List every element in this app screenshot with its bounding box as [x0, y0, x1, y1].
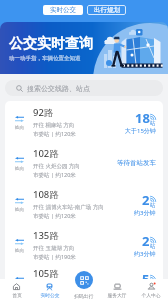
staticText: 18	[135, 109, 150, 127]
staticText: 个人中心	[141, 292, 161, 298]
staticText: 站	[150, 202, 156, 209]
button[interactable]: 实时公交	[33, 279, 66, 300]
staticText: 换向	[15, 207, 24, 213]
staticText: 站	[150, 120, 156, 127]
staticText: 换向	[15, 248, 24, 254]
button[interactable]: 换向	[5, 142, 163, 183]
staticText: 135路	[33, 229, 59, 242]
staticText: 约3分钟	[134, 250, 156, 258]
staticText: 市委站 | 约120米	[33, 291, 76, 299]
staticText: 市委站 | 约120米	[33, 171, 76, 179]
staticText: 站	[150, 281, 156, 288]
staticText: 服务大厅	[107, 292, 127, 298]
staticText: 105路	[33, 267, 59, 280]
staticText: 实时公交	[40, 292, 60, 298]
staticText: 实时公交	[50, 6, 76, 14]
staticText: 约3分钟	[134, 209, 156, 217]
staticText: 出行规划	[94, 6, 120, 14]
staticText: 开往 桐麻站 方向	[33, 121, 75, 129]
staticText: 站	[150, 243, 156, 250]
button[interactable]: 换向	[5, 265, 163, 300]
staticText: 5	[142, 270, 150, 288]
staticText: 开往 人民公园 方向	[33, 282, 80, 290]
staticText: 市委站 | 约190米	[33, 253, 76, 261]
button[interactable]: 首页	[0, 279, 33, 300]
button[interactable]: 实时公交	[43, 5, 83, 15]
staticText: 大于15分钟	[125, 127, 156, 135]
staticText: 102路	[33, 147, 59, 160]
staticText: 92路	[33, 106, 54, 119]
staticText: 2	[142, 191, 150, 209]
staticText: 开往 淄博火车站-南广场 方向	[33, 203, 104, 211]
button[interactable]: 个人中心	[134, 279, 168, 300]
button[interactable]: 换向	[5, 183, 163, 224]
staticText: 108路	[33, 188, 59, 201]
staticText: 换向	[15, 125, 24, 131]
staticText: 首页	[12, 292, 22, 298]
staticText: 开往 玉黛湖 方向	[33, 244, 75, 252]
staticText: 等待首站发车	[117, 159, 156, 167]
staticText: 约7分钟	[134, 288, 156, 296]
staticText: 市委站 | 约120米	[33, 212, 76, 220]
button[interactable]: 出行规划	[87, 5, 126, 15]
staticText: 公交实时查询	[9, 35, 93, 53]
staticText: 扫码出行	[74, 293, 94, 299]
button[interactable]: 扫码出行	[75, 271, 93, 289]
staticText: 2	[142, 232, 150, 250]
staticText: 换向	[15, 166, 24, 172]
button[interactable]: 服务大厅	[100, 279, 134, 300]
staticText: 开往 火炬公园 方向	[33, 162, 80, 170]
staticText: 换向	[15, 286, 24, 292]
button[interactable]: 换向	[5, 224, 163, 265]
button[interactable]: 换向	[5, 101, 163, 142]
button[interactable]: 搜索公交线路、站点	[5, 80, 163, 96]
staticText: 搜索公交线路、站点	[27, 84, 90, 93]
staticText: 市委站 | 约120米	[33, 130, 76, 138]
staticText: 动一动手指，车辆位置全知道	[9, 55, 81, 62]
